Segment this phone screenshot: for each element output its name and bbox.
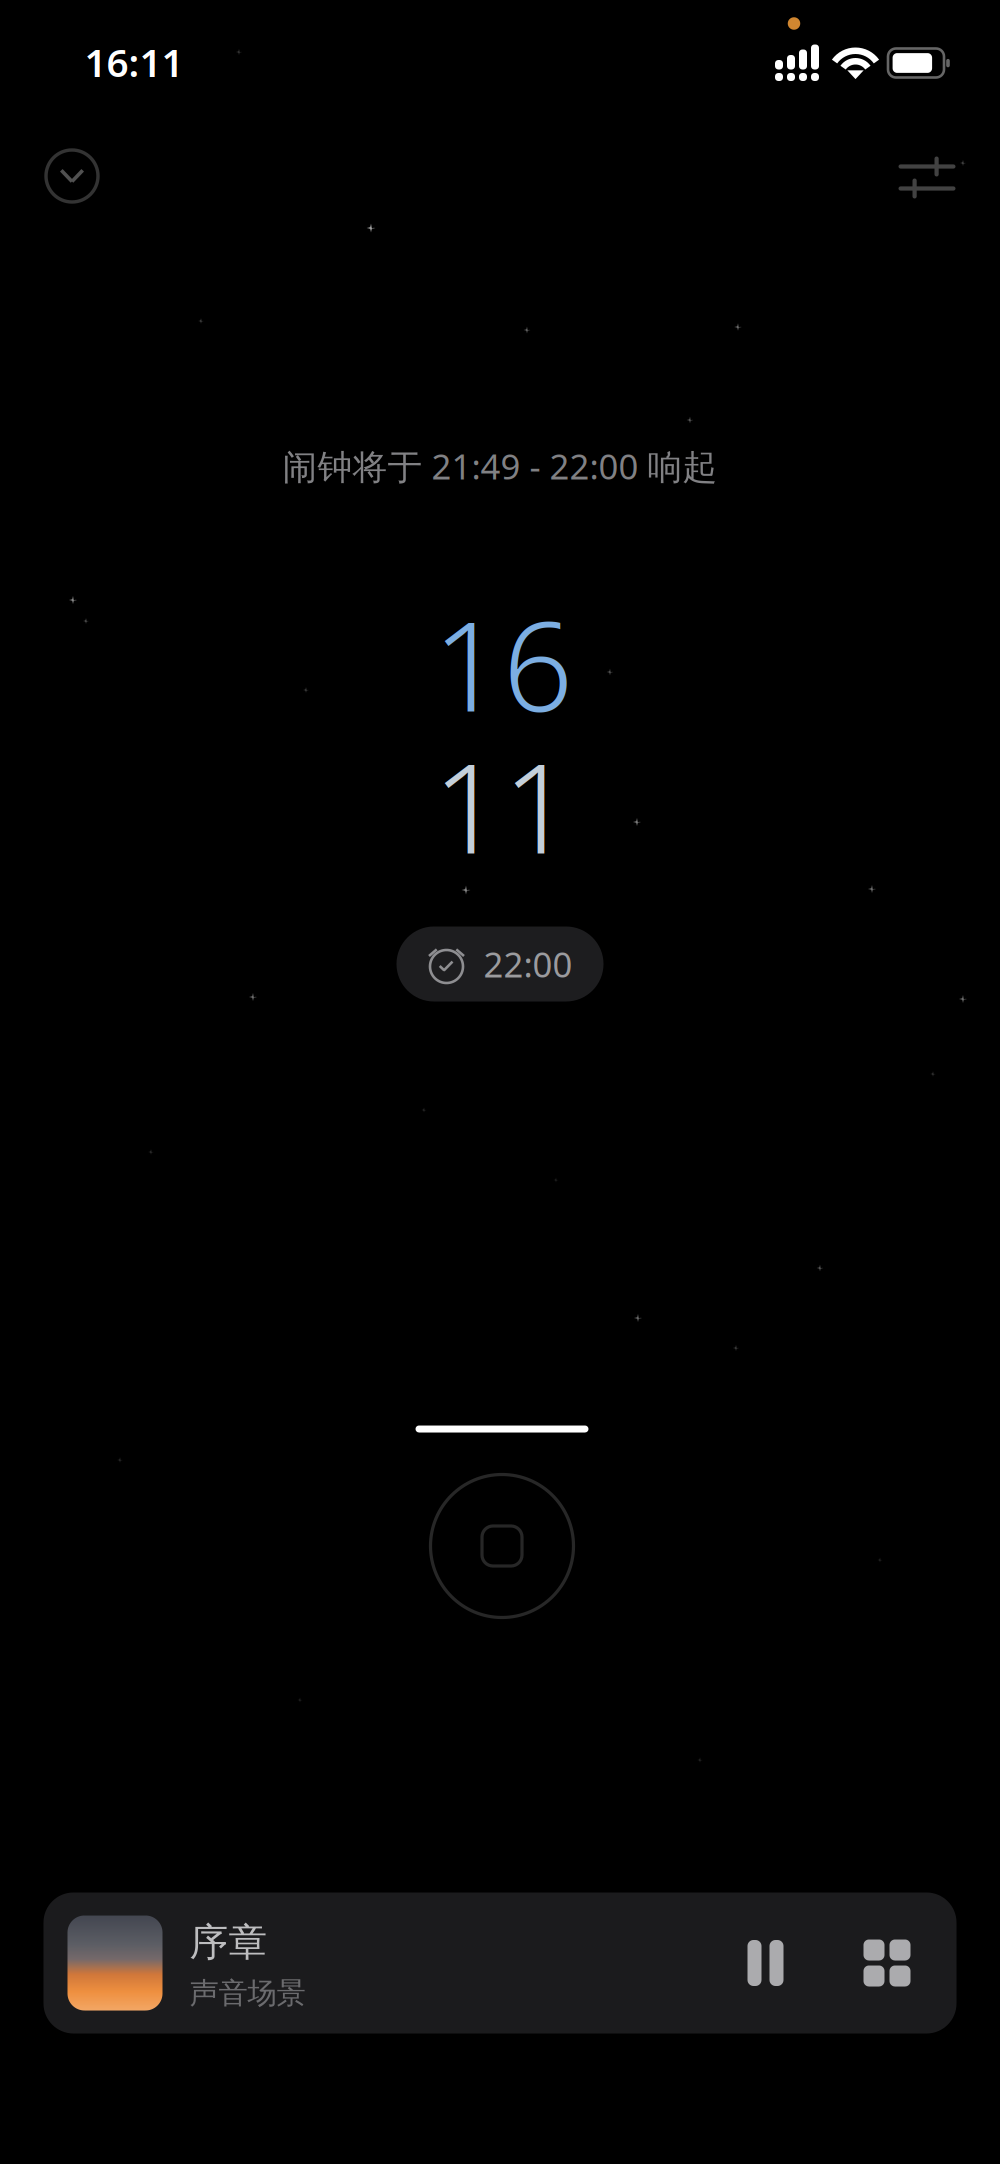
staticText: 16:11 <box>84 36 183 88</box>
staticText: 序章 <box>189 1919 267 1966</box>
button[interactable]: Pause <box>723 1916 807 2010</box>
button[interactable]: Stop <box>412 1456 592 1636</box>
staticText: 闹钟将于 21:49 - 22:00 响起 <box>282 443 717 489</box>
button[interactable]: Collapse <box>24 128 120 224</box>
button[interactable]: Alarm at 22:00 <box>396 926 603 1001</box>
staticText: 11 <box>433 725 573 887</box>
staticText: 声音场景 <box>189 1975 305 2011</box>
staticText: 16 <box>433 583 573 745</box>
button[interactable]: Up next <box>839 1915 934 2010</box>
staticText: 22:00 <box>483 941 572 987</box>
button[interactable]: Sound settings <box>876 134 977 221</box>
